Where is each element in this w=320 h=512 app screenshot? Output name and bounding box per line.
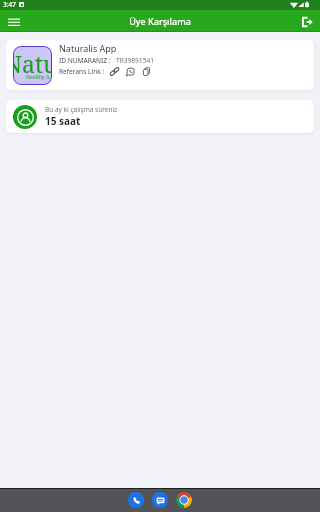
button[interactable]: Chrome	[176, 492, 192, 508]
staticText: Referans Link :	[59, 67, 105, 76]
button[interactable]: Messages	[152, 492, 168, 508]
staticText: Naturalis App	[59, 42, 117, 54]
staticText: ID NUMARANIZ :	[59, 56, 111, 65]
staticText: Healthy A	[26, 74, 50, 81]
button[interactable]: Menu	[4, 12, 23, 31]
button[interactable]: Natu	[6, 40, 314, 90]
button[interactable]: Phone	[128, 492, 144, 508]
button[interactable]: Copy referral link	[108, 65, 120, 77]
staticText: TR39891541	[116, 56, 154, 65]
button[interactable]: Logout	[297, 12, 316, 31]
staticText: Bu ay ki çalışma süreniz	[45, 105, 118, 114]
staticText: 3:47	[3, 0, 16, 9]
button[interactable]: Share on WhatsApp	[124, 65, 136, 77]
staticText: 15 saat	[45, 114, 81, 128]
staticText: Natu	[13, 48, 52, 79]
staticText: Üye Karşılama	[129, 15, 191, 27]
button[interactable]: Copy	[140, 65, 152, 77]
button[interactable]: Bu ay ki çalışma süreniz	[6, 100, 314, 133]
